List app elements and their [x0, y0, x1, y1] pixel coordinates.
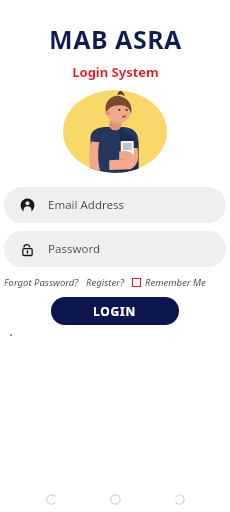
- staticText: MAB ASRA: [49, 22, 182, 56]
- button[interactable]: Back: [38, 486, 64, 512]
- button[interactable]: Register?: [86, 276, 125, 289]
- button[interactable]: Home: [102, 486, 128, 512]
- button[interactable]: Password: [4, 231, 226, 267]
- button[interactable]: Forgot Password?: [4, 276, 79, 289]
- other: Remember Me checkbox: [132, 278, 141, 287]
- staticText: Email Address: [48, 197, 125, 213]
- staticText: Remember Me: [145, 276, 206, 289]
- staticText: Password: [48, 241, 101, 257]
- staticText: LOGIN: [93, 303, 137, 319]
- button[interactable]: LOGIN: [51, 297, 179, 325]
- button[interactable]: Recents: [166, 486, 192, 512]
- button[interactable]: Email Address: [4, 187, 226, 223]
- button[interactable]: Remember Me checkbox: [132, 276, 206, 289]
- staticText: Login System: [72, 63, 159, 81]
